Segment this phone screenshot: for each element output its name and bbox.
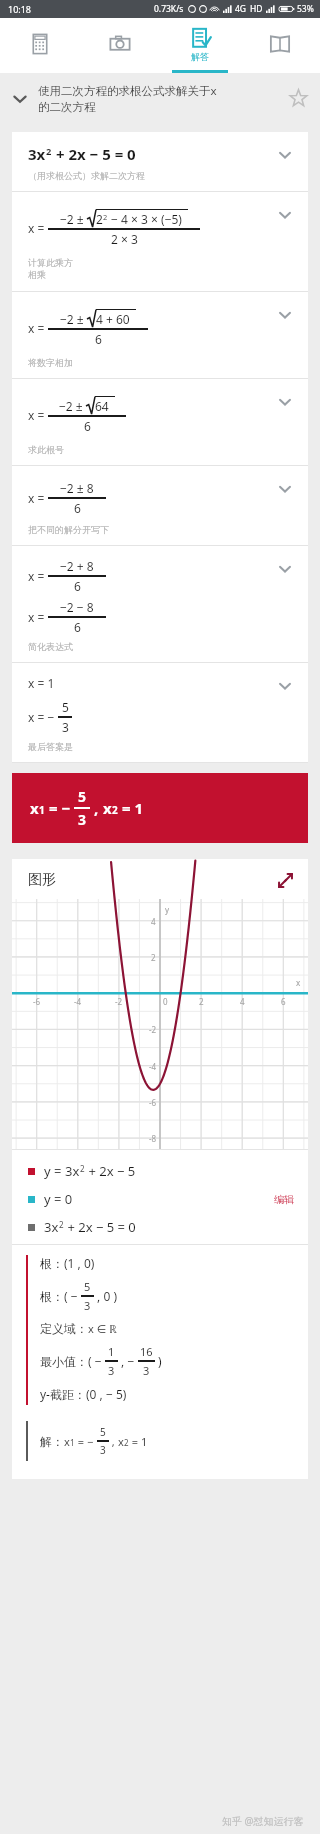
staticText: 5 xyxy=(78,787,87,806)
staticText: 求此根号 xyxy=(28,444,64,455)
staticText: 2 xyxy=(151,952,156,963)
staticText: −2 ± xyxy=(60,211,87,227)
staticText: 6 xyxy=(74,500,81,516)
staticText: 6 xyxy=(281,996,286,1007)
staticText: 10:18 xyxy=(8,3,32,15)
staticText: y = xyxy=(44,1162,65,1180)
button[interactable]: x = xyxy=(12,466,308,546)
staticText: , 0 ) xyxy=(94,1288,118,1304)
button[interactable]: 图形 xyxy=(12,859,308,899)
staticText: 3x xyxy=(65,1162,80,1180)
staticText: 6 xyxy=(74,578,81,594)
staticText: = − xyxy=(75,1434,97,1449)
staticText: 3 xyxy=(78,810,87,829)
staticText: x xyxy=(296,977,301,988)
button[interactable]: x = 1 xyxy=(12,663,308,763)
staticText: 计算此乘方 相乘 xyxy=(28,257,73,281)
button[interactable]: Dictionary xyxy=(240,18,320,70)
staticText: 解答 xyxy=(191,51,209,62)
staticText: 1 xyxy=(70,1437,75,1448)
staticText: -6 xyxy=(149,1097,157,1108)
staticText: -6 xyxy=(33,996,41,1007)
staticText: x = xyxy=(28,568,48,584)
staticText: 定义域： xyxy=(40,1321,88,1336)
staticText: 将数字相加 xyxy=(28,357,73,368)
staticText: 4 xyxy=(240,996,245,1007)
staticText: 4G xyxy=(235,3,247,15)
staticText: 2 xyxy=(46,145,52,158)
staticText: , xyxy=(90,798,103,818)
staticText: (1 , 0) xyxy=(64,1255,95,1271)
button[interactable]: Collapse xyxy=(0,73,320,124)
staticText: 根： xyxy=(40,1256,64,1271)
staticText: 把不同的解分开写下 xyxy=(28,524,109,535)
staticText: 解： xyxy=(40,1434,64,1449)
staticText: 3 xyxy=(84,1298,91,1313)
other: Collapse xyxy=(10,89,30,109)
staticText: −2 − 8 xyxy=(60,599,94,615)
staticText: y xyxy=(165,904,170,915)
staticText: -2 xyxy=(149,1024,157,1035)
staticText: 编辑 xyxy=(274,1193,294,1206)
button[interactable]: 解答 xyxy=(160,18,240,70)
staticText: 64 xyxy=(95,398,109,414)
staticText: HD xyxy=(250,3,263,15)
staticText: 6 xyxy=(95,331,102,347)
staticText: -8 xyxy=(149,1133,157,1144)
button[interactable]: x = xyxy=(12,292,308,379)
staticText: + 2x − 5 = 0 xyxy=(64,1218,136,1236)
staticText: = 1 xyxy=(129,1434,148,1449)
button[interactable]: x xyxy=(12,773,308,843)
other: Favorite xyxy=(289,89,308,108)
staticText: 3 xyxy=(100,1443,106,1457)
staticText: 1 xyxy=(108,1344,115,1359)
staticText: , xyxy=(109,1434,118,1449)
staticText: y = 0 xyxy=(44,1190,73,1208)
staticText: 3x xyxy=(28,144,46,164)
button[interactable]: 3x xyxy=(12,132,308,192)
staticText: -4 xyxy=(149,1061,157,1072)
staticText: −2 ± xyxy=(59,398,86,414)
staticText: 0 xyxy=(163,996,168,1007)
staticText: x = xyxy=(28,320,48,336)
staticText: 知乎 @怼知运行客 xyxy=(222,1814,304,1828)
staticText: x xyxy=(103,798,112,818)
staticText: ( − xyxy=(88,1353,105,1369)
button[interactable]: x = xyxy=(12,546,308,663)
staticText: 2 xyxy=(103,212,108,222)
staticText: 2 xyxy=(59,1219,64,1230)
button[interactable]: 编辑 xyxy=(274,1193,294,1206)
staticText: x = 1 xyxy=(28,675,55,691)
staticText: (0 , − 5) xyxy=(86,1386,127,1402)
staticText: 5 xyxy=(84,1279,91,1294)
staticText: -2 xyxy=(115,996,123,1007)
staticText: x = xyxy=(28,407,48,423)
staticText: , − xyxy=(118,1353,138,1369)
button[interactable]: x = xyxy=(12,192,308,292)
staticText: 使用二次方程的求根公式求解关于x 的二次方程 xyxy=(38,83,283,114)
staticText: 4 xyxy=(151,916,156,927)
staticText: -4 xyxy=(74,996,82,1007)
staticText: 6 xyxy=(84,418,91,434)
staticText: 1 xyxy=(39,803,45,817)
staticText: ) xyxy=(155,1353,162,1369)
staticText: 2 xyxy=(96,211,103,227)
button[interactable]: Camera xyxy=(80,18,160,70)
staticText: 3 xyxy=(62,719,69,735)
staticText: 2 xyxy=(112,803,118,817)
staticText: （用求根公式）求解二次方程 xyxy=(28,170,145,181)
staticText: −2 ± 8 xyxy=(60,480,94,496)
staticText: 16 xyxy=(140,1344,153,1359)
staticText: 2 xyxy=(80,1163,85,1174)
staticText: = − xyxy=(45,798,74,818)
staticText: 2 xyxy=(199,996,204,1007)
staticText: 3 xyxy=(108,1363,115,1378)
button[interactable]: x = xyxy=(12,379,308,466)
staticText: x = xyxy=(28,490,48,506)
button[interactable]: Calculator xyxy=(0,18,80,70)
staticText: 简化表达式 xyxy=(28,641,73,652)
staticText: x xyxy=(64,1434,70,1449)
staticText: 最小值： xyxy=(40,1354,88,1369)
staticText: 5 xyxy=(100,1425,106,1439)
staticText: x = xyxy=(28,220,48,236)
